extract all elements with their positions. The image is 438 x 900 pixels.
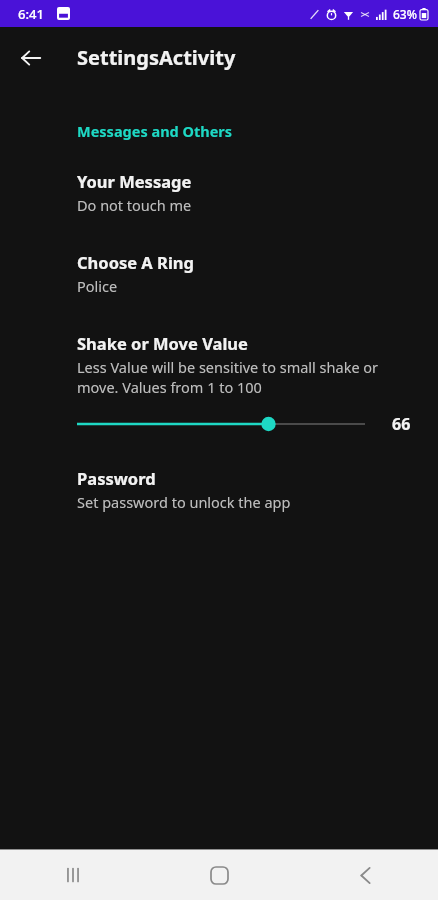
staticText: Messages and Others — [77, 121, 438, 141]
button[interactable]: Back — [292, 850, 438, 900]
staticText: Your Message — [77, 170, 192, 192]
button[interactable]: Recent apps — [0, 850, 146, 900]
button[interactable]: Back — [9, 36, 53, 80]
button[interactable]: Your Message — [0, 170, 438, 215]
button[interactable]: Home — [146, 850, 292, 900]
staticText: Set password to unlock the app — [77, 492, 291, 512]
button[interactable]: Choose A Ring — [0, 251, 438, 296]
staticText: Do not touch me — [77, 195, 192, 215]
staticText: 6:41 — [18, 5, 44, 23]
button[interactable]: 66 — [0, 411, 438, 437]
staticText: Shake or Move Value — [77, 332, 248, 354]
staticText: SettingsActivity — [77, 44, 236, 71]
staticText: Password — [77, 467, 156, 489]
staticText: 63% — [393, 6, 417, 22]
staticText: Choose A Ring — [77, 251, 194, 273]
staticText: 66 — [392, 413, 411, 435]
button[interactable]: Password — [0, 467, 438, 512]
staticText: Less Value will be sensitive to small sh… — [77, 357, 410, 398]
staticText: Police — [77, 276, 118, 296]
